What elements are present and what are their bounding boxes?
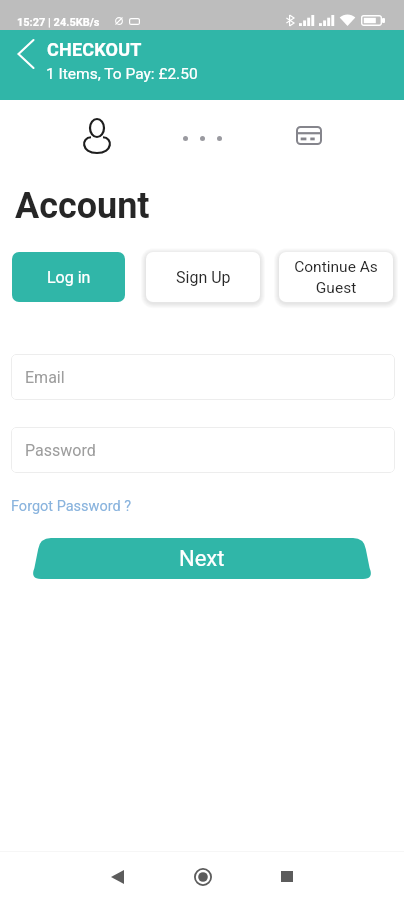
button[interactable]: Recent apps [265, 855, 308, 898]
button[interactable]: Home [181, 855, 224, 898]
button[interactable]: Next [0, 538, 404, 579]
staticText: Email [25, 368, 65, 387]
button[interactable]: Payment [286, 113, 331, 158]
staticText: Password [25, 441, 96, 460]
button[interactable]: Back [10, 38, 44, 72]
button[interactable]: Email [11, 354, 395, 400]
staticText: Continue As Guest [289, 258, 383, 297]
staticText: Next [179, 546, 225, 572]
button[interactable]: Password [11, 427, 395, 473]
staticText: 15:27 | 24.5KB/s [17, 16, 100, 29]
button[interactable]: Continue As Guest [279, 252, 393, 302]
button[interactable]: Account [74, 113, 119, 158]
button[interactable]: Forgot Password ? [11, 498, 132, 515]
staticText: CHECKOUT [47, 39, 142, 60]
button[interactable]: More options [180, 116, 225, 161]
staticText: Log in [47, 268, 91, 287]
staticText: Sign Up [176, 268, 231, 287]
button[interactable]: Back [96, 855, 139, 898]
button[interactable]: Sign Up [146, 252, 260, 302]
staticText: 1 Items, To Pay: £2.50 [46, 65, 198, 83]
staticText: Account [15, 185, 150, 227]
button[interactable]: Log in [12, 252, 125, 302]
